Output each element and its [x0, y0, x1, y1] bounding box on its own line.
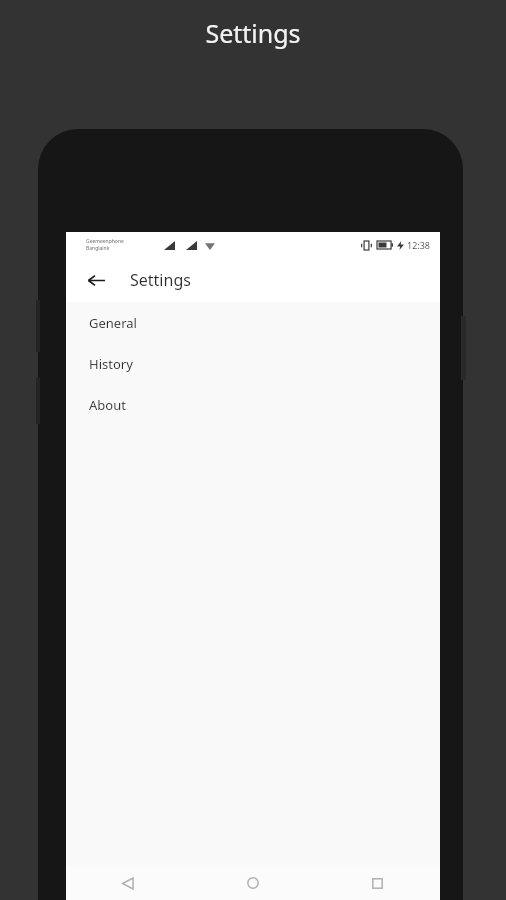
- button[interactable]: General: [66, 302, 440, 343]
- staticText: General: [89, 314, 137, 332]
- button[interactable]: Back: [66, 866, 190, 900]
- staticText: Settings: [130, 269, 191, 291]
- staticText: Settings: [205, 16, 301, 50]
- button[interactable]: About: [66, 384, 440, 425]
- button[interactable]: History: [66, 343, 440, 384]
- staticText: About: [89, 396, 126, 414]
- staticText: 12:38: [407, 239, 431, 251]
- button[interactable]: Recent apps: [315, 866, 440, 900]
- staticText: Geemeenphone: [86, 238, 124, 245]
- button[interactable]: Home: [190, 866, 315, 900]
- staticText: Banglaink: [86, 245, 110, 252]
- staticText: History: [89, 355, 133, 373]
- button[interactable]: Back: [78, 262, 114, 298]
